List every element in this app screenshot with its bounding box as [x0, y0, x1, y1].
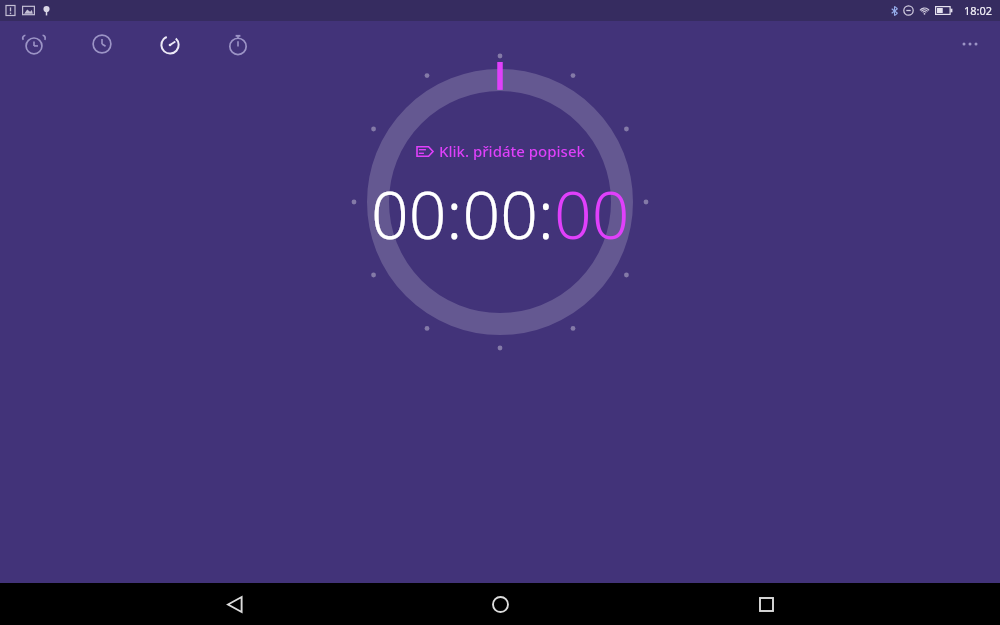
- staticText: 00: [554, 168, 630, 258]
- button[interactable]: Recent apps: [735, 583, 797, 625]
- button[interactable]: Stopwatch: [148, 22, 192, 66]
- button[interactable]: Home: [469, 583, 531, 625]
- button[interactable]: Timer: [216, 22, 260, 66]
- button[interactable]: Klik. přidáte popisek: [410, 138, 591, 164]
- staticText: Klik. přidáte popisek: [439, 141, 585, 161]
- button[interactable]: More options: [948, 22, 992, 66]
- button[interactable]: Back: [204, 583, 266, 625]
- button[interactable]: Alarm: [12, 22, 56, 66]
- button[interactable]: World clock: [80, 22, 124, 66]
- staticText: 00:00:: [371, 168, 554, 258]
- staticText: 18:02: [964, 3, 993, 18]
